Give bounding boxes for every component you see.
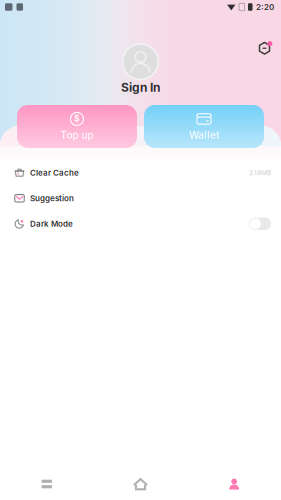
button[interactable]: Home [94, 468, 187, 500]
staticText: Wallet [189, 129, 219, 141]
button[interactable]: Wallet [144, 105, 264, 148]
button[interactable]: $ [17, 105, 137, 148]
button[interactable]: Suggestion [0, 185, 281, 211]
staticText: Clear Cache [30, 168, 79, 178]
button[interactable]: Menu [0, 468, 94, 500]
button[interactable]: Profile [187, 468, 281, 500]
button[interactable]: Sign In [121, 80, 160, 95]
button[interactable]: Scan [254, 38, 275, 58]
button[interactable]: Profile photo [122, 43, 159, 80]
staticText: Top up [60, 129, 93, 141]
staticText: $ [74, 113, 80, 124]
staticText: Dark Mode [30, 219, 73, 229]
staticText: Suggestion [30, 193, 74, 203]
staticText: 2.18MB [249, 169, 271, 177]
button[interactable]: Dark Mode [0, 211, 281, 236]
staticText: Sign In [121, 80, 160, 95]
button[interactable]: Clear Cache [0, 160, 281, 185]
staticText: 2:20 [256, 2, 274, 12]
